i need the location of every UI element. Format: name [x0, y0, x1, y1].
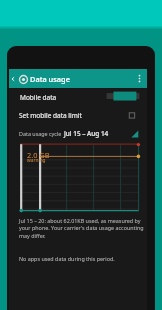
button[interactable]: Navigate up: [9, 69, 147, 88]
staticText: Data usage cycle: [19, 130, 62, 137]
staticText: Jul 15 – 20: about 62.01KB used, as meas…: [19, 217, 141, 224]
staticText: Mobile data: [20, 93, 57, 102]
staticText: your phone. Your carrier's data usage ac…: [19, 224, 144, 231]
staticText: Data usage: [30, 74, 70, 84]
staticText: warning: [27, 157, 46, 164]
staticText: 2.0 GB: [27, 150, 50, 160]
staticText: No apps used data during this period.: [19, 255, 115, 262]
button[interactable]: Data usage cycle: [9, 125, 147, 142]
button[interactable]: Navigate up: [9, 69, 17, 88]
staticText: Jul 15 – Aug 14: [64, 129, 109, 138]
button[interactable]: Mobile data: [9, 88, 147, 107]
staticText: may differ.: [19, 232, 46, 239]
button[interactable]: Set mobile data limit: [9, 107, 147, 125]
button[interactable]: More options: [131, 69, 147, 88]
staticText: Set mobile data limit: [19, 111, 82, 120]
